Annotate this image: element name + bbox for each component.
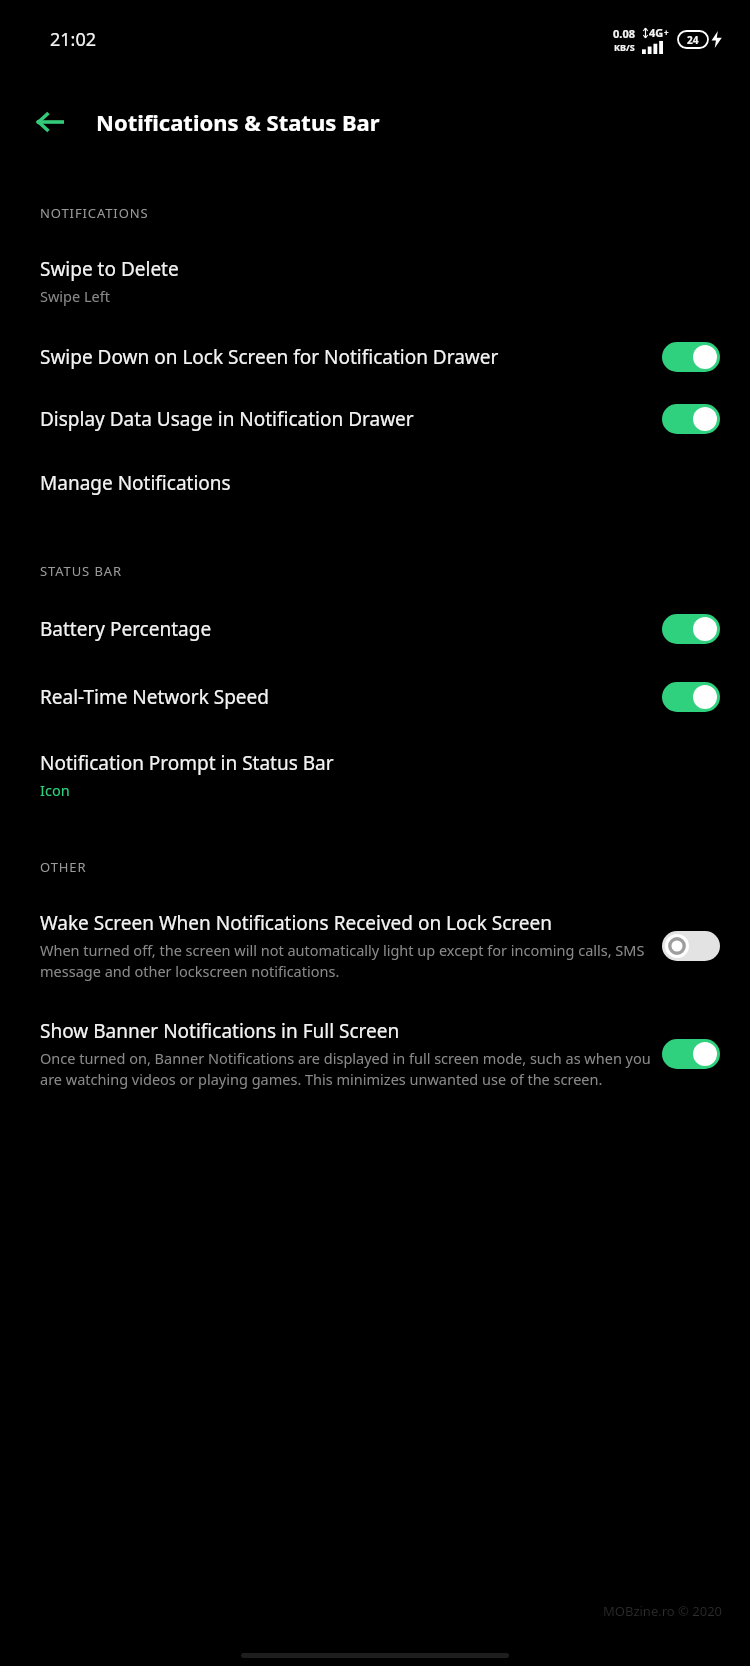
staticText: 24 [687,33,699,47]
staticText: Wake Screen When Notifications Received … [40,910,654,936]
staticText: Once turned on, Banner Notifications are… [40,1048,654,1090]
button[interactable]: Manage Notifications [0,470,750,496]
button[interactable]: Toggle on [662,682,720,712]
staticText: When turned off, the screen will not aut… [40,940,654,982]
staticText: NOTIFICATIONS [40,204,149,222]
staticText: OTHER [40,858,87,876]
staticText: MOBzine.ro © 2020 [0,1602,722,1620]
button[interactable]: Toggle on [662,404,720,434]
staticText: Swipe to Delete [40,256,720,282]
button[interactable]: Swipe Down on Lock Screen for Notificati… [0,342,750,372]
button[interactable]: Toggle on [662,614,720,644]
staticText: Notification Prompt in Status Bar [40,750,720,776]
button[interactable]: Toggle on [662,1039,720,1069]
staticText: KB/S [614,41,635,53]
staticText: Notifications & Status Bar [96,107,380,137]
staticText: Display Data Usage in Notification Drawe… [40,406,494,432]
button[interactable]: Battery Percentage [0,614,750,644]
staticText: Swipe Left [40,286,110,306]
staticText: STATUS BAR [40,562,122,580]
staticText: Battery Percentage [40,616,494,642]
button[interactable]: Display Data Usage in Notification Drawe… [0,404,750,434]
button[interactable]: Back [24,96,76,148]
button[interactable]: Toggle off [662,931,720,961]
button[interactable]: Real-Time Network Speed [0,682,750,712]
button[interactable]: Toggle on [662,342,720,372]
staticText: 4G [649,25,664,40]
staticText: Show Banner Notifications in Full Screen [40,1018,654,1044]
button[interactable]: Notification Prompt in Status Bar [0,750,750,800]
staticText: Icon [40,780,70,800]
staticText: 21:02 [50,27,97,52]
button[interactable]: Show Banner Notifications in Full Screen [0,1018,750,1090]
staticText: + [664,27,669,38]
button[interactable]: Wake Screen When Notifications Received … [0,910,750,982]
staticText: Swipe Down on Lock Screen for Notificati… [40,344,654,370]
staticText: Manage Notifications [40,470,720,496]
button[interactable]: Swipe to Delete [0,256,750,306]
staticText: 0.08 [613,26,635,41]
staticText: Real-Time Network Speed [40,684,494,710]
